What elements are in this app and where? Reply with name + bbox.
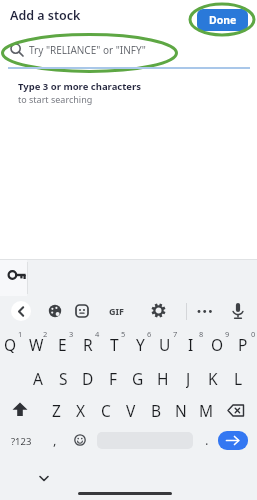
staticText: M bbox=[199, 400, 214, 420]
staticText: 4 bbox=[95, 329, 100, 339]
button[interactable] bbox=[11, 301, 31, 321]
button[interactable]: ?123 bbox=[7, 432, 35, 450]
staticText: Type 3 or more characters bbox=[18, 80, 142, 93]
button[interactable]: Z bbox=[44, 400, 68, 420]
button[interactable]: X bbox=[69, 400, 93, 420]
staticText: H bbox=[157, 368, 169, 388]
staticText: X bbox=[76, 400, 86, 420]
staticText: Done bbox=[209, 13, 237, 27]
button[interactable]: , bbox=[47, 430, 63, 450]
staticText: T bbox=[110, 334, 119, 353]
button[interactable]: L bbox=[226, 368, 250, 388]
staticText: U bbox=[159, 334, 171, 353]
button[interactable]: Q bbox=[0, 334, 22, 353]
staticText: Add a stock bbox=[10, 7, 81, 24]
button[interactable]: F bbox=[101, 368, 125, 388]
button[interactable] bbox=[11, 402, 29, 417]
button[interactable]: C bbox=[94, 400, 118, 420]
button[interactable]: N bbox=[169, 400, 193, 420]
button[interactable]: V bbox=[119, 400, 143, 420]
staticText: 5 bbox=[121, 329, 126, 339]
staticText: P bbox=[238, 334, 248, 353]
button[interactable]: O bbox=[205, 334, 229, 353]
staticText: , bbox=[53, 431, 57, 449]
button[interactable]: R bbox=[76, 334, 100, 353]
button[interactable]: D bbox=[76, 368, 100, 388]
staticText: Try "RELIANCE" or "INFY" bbox=[29, 43, 146, 57]
button[interactable] bbox=[6, 38, 250, 66]
button[interactable]: G bbox=[126, 368, 150, 388]
button[interactable]: E bbox=[50, 334, 74, 353]
staticText: C bbox=[101, 400, 111, 420]
button[interactable]: T bbox=[102, 334, 126, 353]
staticText: GIF bbox=[109, 305, 124, 317]
button[interactable]: U bbox=[153, 334, 177, 353]
button[interactable]: H bbox=[151, 368, 175, 388]
button[interactable] bbox=[48, 304, 62, 318]
staticText: W bbox=[29, 334, 44, 353]
staticText: V bbox=[126, 400, 136, 420]
staticText: N bbox=[175, 400, 187, 420]
staticText: 6 bbox=[147, 329, 152, 339]
button[interactable]: B bbox=[144, 400, 168, 420]
staticText: B bbox=[151, 400, 162, 420]
staticText: O bbox=[211, 334, 224, 353]
button[interactable] bbox=[151, 303, 166, 318]
button[interactable]: K bbox=[201, 368, 225, 388]
staticText: L bbox=[234, 368, 243, 388]
staticText: S bbox=[59, 368, 68, 388]
staticText: 3 bbox=[69, 329, 74, 339]
staticText: ?123 bbox=[11, 435, 32, 448]
button[interactable] bbox=[39, 475, 49, 482]
button[interactable]: Done bbox=[197, 9, 248, 31]
staticText: 2 bbox=[43, 329, 48, 339]
staticText: 7 bbox=[173, 329, 178, 339]
staticText: 9 bbox=[225, 329, 230, 339]
staticText: Z bbox=[52, 400, 61, 420]
button[interactable]: W bbox=[24, 334, 48, 353]
staticText: 1 bbox=[18, 329, 23, 339]
staticText: 0 bbox=[251, 329, 256, 339]
staticText: J bbox=[186, 368, 191, 388]
staticText: 8 bbox=[199, 329, 204, 339]
button[interactable]: M bbox=[194, 400, 218, 420]
button[interactable] bbox=[0, 260, 27, 296]
button[interactable] bbox=[74, 434, 86, 446]
staticText: . bbox=[205, 431, 209, 449]
button[interactable]: I bbox=[179, 334, 203, 353]
staticText: K bbox=[208, 368, 218, 388]
staticText: Y bbox=[136, 334, 145, 353]
staticText: Q bbox=[4, 334, 17, 353]
button[interactable]: GIF bbox=[104, 303, 128, 319]
staticText: D bbox=[82, 368, 94, 388]
button[interactable]: A bbox=[26, 368, 50, 388]
button[interactable]: Y bbox=[128, 334, 152, 353]
button[interactable]: . bbox=[199, 430, 215, 450]
button[interactable]: P bbox=[231, 334, 255, 353]
staticText: I bbox=[188, 334, 194, 353]
button[interactable] bbox=[218, 431, 248, 450]
staticText: A bbox=[33, 368, 43, 388]
staticText: R bbox=[83, 334, 93, 353]
button[interactable] bbox=[75, 304, 89, 318]
button[interactable] bbox=[231, 302, 245, 320]
staticText: E bbox=[58, 334, 67, 353]
button[interactable]: S bbox=[51, 368, 75, 388]
staticText: to start searching bbox=[18, 93, 93, 105]
staticText: G bbox=[132, 368, 144, 388]
staticText: F bbox=[109, 368, 118, 388]
button[interactable]: J bbox=[176, 368, 200, 388]
button[interactable] bbox=[227, 404, 245, 417]
button[interactable] bbox=[196, 305, 214, 318]
